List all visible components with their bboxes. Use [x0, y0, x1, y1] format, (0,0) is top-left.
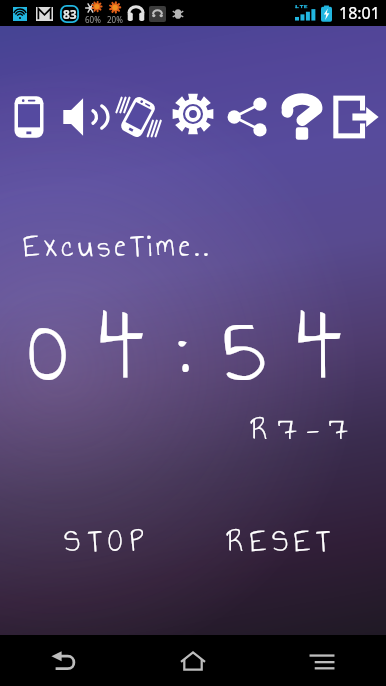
staticText: R7-7 [251, 404, 358, 453]
button[interactable]: STOP [55, 514, 160, 566]
button[interactable]: Home [128, 635, 257, 686]
button[interactable]: Silent mode [2, 88, 56, 146]
staticText: 04:54 [26, 272, 374, 423]
button[interactable]: Exit [330, 88, 384, 146]
staticText: ExcuseTime.. [23, 221, 213, 270]
staticText: 60% [85, 14, 101, 25]
staticText: 20% [107, 14, 123, 25]
button[interactable]: RESET [220, 514, 342, 566]
button[interactable]: Share [221, 88, 275, 146]
button[interactable]: Help [275, 88, 329, 146]
button[interactable]: Back [0, 635, 128, 686]
staticText: STOP [64, 516, 151, 565]
button[interactable]: Recent apps [257, 635, 386, 686]
button[interactable]: Vibrate [111, 88, 165, 146]
button[interactable]: Settings [166, 88, 220, 146]
staticText: 18:01 [339, 2, 380, 24]
staticText: 83 [63, 6, 77, 22]
button[interactable]: Sound [57, 88, 111, 146]
staticText: RESET [227, 516, 335, 565]
